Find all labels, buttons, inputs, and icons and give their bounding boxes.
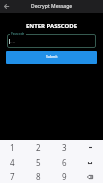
staticText: ENTER PASSCODE: [0, 22, 103, 30]
button[interactable]: 8: [25, 170, 51, 183]
staticText: 8: [36, 171, 41, 182]
button[interactable]: Back: [0, 0, 13, 13]
button[interactable]: Backspace: [77, 170, 103, 183]
staticText: 7: [10, 171, 15, 182]
staticText: Submit: [46, 54, 58, 59]
staticText: Decrypt Message: [31, 3, 73, 10]
staticText: 1: [10, 142, 15, 153]
button[interactable]: 5: [25, 155, 51, 170]
button[interactable]: 4: [0, 155, 25, 170]
button[interactable]: 3: [51, 140, 77, 155]
button[interactable]: Space: [77, 155, 103, 170]
button[interactable]: 2: [25, 140, 51, 155]
staticText: ••••: [10, 40, 16, 45]
staticText: 9: [62, 171, 67, 182]
button[interactable]: [7, 34, 96, 48]
button[interactable]: 9: [51, 170, 77, 183]
button[interactable]: Dash: [77, 140, 103, 155]
staticText: 4: [10, 157, 15, 168]
staticText: 3: [62, 142, 67, 153]
button[interactable]: 1: [0, 140, 25, 155]
button[interactable]: 7: [0, 170, 25, 183]
button[interactable]: Submit: [6, 51, 97, 64]
button[interactable]: 6: [51, 155, 77, 170]
staticText: 5: [36, 157, 41, 168]
staticText: Passcode: [11, 32, 25, 36]
staticText: 2: [36, 142, 41, 153]
staticText: 6: [62, 157, 67, 168]
